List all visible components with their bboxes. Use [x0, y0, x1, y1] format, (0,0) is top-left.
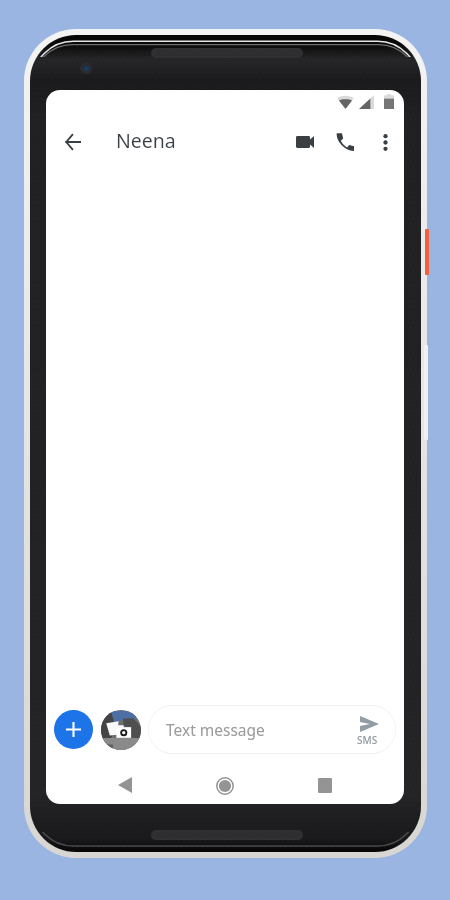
button[interactable]: Call: [327, 124, 363, 160]
button[interactable]: Recent apps: [308, 768, 342, 802]
button[interactable]: Send SMS: [348, 706, 390, 746]
button[interactable]: Home: [208, 769, 242, 803]
button[interactable]: Back: [108, 768, 142, 802]
staticText: SMS: [357, 733, 378, 747]
button[interactable]: Text message: [148, 705, 396, 754]
button[interactable]: Back: [53, 122, 93, 162]
staticText: Text message: [166, 719, 265, 740]
staticText: Neena: [116, 127, 176, 154]
button[interactable]: Video call: [287, 124, 323, 160]
button[interactable]: Camera: [101, 710, 141, 750]
button[interactable]: More options: [367, 124, 403, 160]
button[interactable]: Start new conversation: [54, 710, 93, 749]
